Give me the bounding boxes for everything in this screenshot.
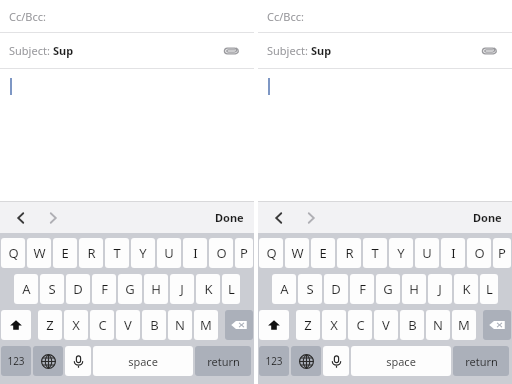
button[interactable]: J [428, 274, 452, 304]
button[interactable]: return [453, 346, 509, 376]
button[interactable]: G [376, 274, 400, 304]
button[interactable]: D [66, 274, 90, 304]
button[interactable]: Change keyboard [291, 346, 321, 376]
button[interactable]: W [27, 238, 51, 268]
button[interactable]: Done [215, 210, 244, 225]
staticText: J [438, 280, 442, 298]
staticText: return [465, 354, 498, 369]
button[interactable]: Q [259, 238, 283, 268]
staticText: W [33, 244, 46, 262]
staticText: C [98, 316, 107, 334]
button[interactable] [258, 69, 512, 201]
button[interactable]: Next field [298, 205, 324, 231]
button[interactable]: Attach file [478, 40, 500, 62]
staticText: Y [139, 244, 147, 262]
button[interactable]: G [118, 274, 142, 304]
button[interactable]: Previous field [266, 205, 292, 231]
staticText: C [356, 316, 365, 334]
staticText: M [458, 316, 470, 334]
staticText: Subject: [267, 43, 311, 58]
button[interactable]: P [235, 238, 253, 268]
button[interactable]: Dictate [65, 346, 91, 376]
button[interactable]: space [93, 346, 193, 376]
staticText: Q [8, 244, 19, 262]
staticText: N [433, 316, 443, 334]
button[interactable]: X [64, 310, 88, 340]
button[interactable]: return [195, 346, 251, 376]
button[interactable]: I [183, 238, 207, 268]
button[interactable]: C [90, 310, 114, 340]
button[interactable]: R [79, 238, 103, 268]
button[interactable]: S [298, 274, 322, 304]
button[interactable]: T [105, 238, 129, 268]
button[interactable]: M [452, 310, 476, 340]
button[interactable]: M [194, 310, 218, 340]
button[interactable]: Next field [40, 205, 66, 231]
button[interactable]: Y [131, 238, 155, 268]
button[interactable]: U [157, 238, 181, 268]
button[interactable]: Done [473, 210, 502, 225]
button[interactable]: H [144, 274, 168, 304]
staticText: Sup [311, 43, 332, 58]
button[interactable]: Subject: [258, 33, 512, 68]
button[interactable]: B [400, 310, 424, 340]
button[interactable]: L [480, 274, 498, 304]
button[interactable]: space [351, 346, 451, 376]
staticText: X [330, 316, 338, 334]
button[interactable]: Dictate [323, 346, 349, 376]
button[interactable]: K [454, 274, 478, 304]
button[interactable]: S [40, 274, 64, 304]
button[interactable]: Shift [1, 310, 31, 340]
button[interactable]: Attach file [220, 40, 242, 62]
button[interactable]: Delete [483, 310, 511, 340]
staticText: W [291, 244, 304, 262]
staticText: H [151, 280, 161, 298]
button[interactable]: A [14, 274, 38, 304]
button[interactable] [0, 69, 254, 201]
button[interactable]: Shift [259, 310, 289, 340]
button[interactable]: U [415, 238, 439, 268]
button[interactable]: A [272, 274, 296, 304]
staticText: H [409, 280, 419, 298]
staticText: R [345, 244, 354, 262]
button[interactable]: X [322, 310, 346, 340]
button[interactable]: Z [296, 310, 320, 340]
button[interactable]: L [222, 274, 240, 304]
button[interactable]: E [311, 238, 335, 268]
button[interactable]: V [116, 310, 140, 340]
button[interactable]: Change keyboard [33, 346, 63, 376]
button[interactable]: O [467, 238, 491, 268]
button[interactable]: H [402, 274, 426, 304]
button[interactable]: Subject: [0, 33, 254, 68]
button[interactable]: Delete [225, 310, 253, 340]
button[interactable]: Cc/Bcc: [0, 0, 254, 32]
button[interactable]: N [168, 310, 192, 340]
button[interactable]: K [196, 274, 220, 304]
staticText: X [72, 316, 80, 334]
button[interactable]: F [350, 274, 374, 304]
button[interactable]: F [92, 274, 116, 304]
button[interactable]: 123 [1, 346, 31, 376]
button[interactable]: V [374, 310, 398, 340]
staticText: I [451, 244, 456, 262]
button[interactable]: B [142, 310, 166, 340]
button[interactable]: Q [1, 238, 25, 268]
button[interactable]: T [363, 238, 387, 268]
button[interactable]: C [348, 310, 372, 340]
button[interactable]: W [285, 238, 309, 268]
button[interactable]: Y [389, 238, 413, 268]
button[interactable]: D [324, 274, 348, 304]
button[interactable]: I [441, 238, 465, 268]
button[interactable]: Cc/Bcc: [258, 0, 512, 32]
button[interactable]: Z [38, 310, 62, 340]
button[interactable]: R [337, 238, 361, 268]
staticText: Z [304, 316, 312, 334]
button[interactable]: Previous field [8, 205, 34, 231]
button[interactable]: P [493, 238, 511, 268]
staticText: Cc/Bcc: [267, 9, 304, 24]
button[interactable]: O [209, 238, 233, 268]
button[interactable]: N [426, 310, 450, 340]
button[interactable]: 123 [259, 346, 289, 376]
button[interactable]: E [53, 238, 77, 268]
button[interactable]: J [170, 274, 194, 304]
